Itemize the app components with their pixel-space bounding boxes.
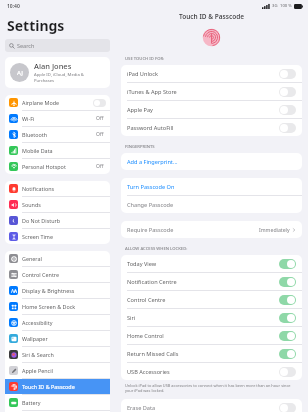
staticText: Apple Pay (127, 106, 279, 114)
button[interactable]: Siri (121, 309, 302, 326)
staticText: 10:40 (7, 3, 20, 10)
staticText: Touch ID & Passcode (22, 383, 106, 390)
staticText: Off (96, 115, 104, 122)
button[interactable]: On (279, 313, 296, 323)
button[interactable]: Off (279, 403, 296, 412)
staticText: 3G (272, 3, 278, 9)
button[interactable]: Erase Data (121, 399, 302, 412)
button[interactable]: Off (279, 69, 296, 79)
button[interactable]: Home Control (121, 327, 302, 344)
staticText: USE TOUCH ID FOR: (125, 56, 165, 62)
staticText: Bluetooth (22, 131, 96, 138)
button[interactable]: Today View (121, 255, 302, 272)
staticText: Return Missed Calls (127, 350, 279, 358)
staticText: Accessibility (22, 319, 106, 326)
staticText: USB Accessories (127, 368, 279, 376)
button[interactable]: Airplane Mode (5, 95, 110, 110)
button[interactable]: General (5, 251, 110, 266)
staticText: Apple ID, iCloud, Media & Purchases (34, 72, 105, 84)
staticText: Personal Hotspot (22, 163, 96, 170)
staticText: Siri (127, 314, 279, 322)
button[interactable]: Off (279, 87, 296, 97)
staticText: ALLOW ACCESS WHEN LOCKED: (125, 246, 188, 252)
staticText: Battery (22, 399, 106, 406)
button[interactable]: On (279, 331, 296, 341)
staticText: General (22, 255, 106, 262)
staticText: Today View (127, 260, 279, 268)
staticText: Erase Data (127, 404, 279, 412)
staticText: iPad Unlock (127, 70, 279, 78)
button[interactable]: Bluetooth (5, 127, 110, 142)
button[interactable]: Turn Passcode On (121, 178, 302, 195)
staticText: Do Not Disturb (22, 217, 106, 224)
button[interactable]: Sounds (5, 197, 110, 212)
staticText: Off (96, 131, 104, 138)
staticText: AJ (17, 69, 23, 77)
button[interactable]: Change Passcode (121, 196, 302, 213)
button[interactable]: On (279, 349, 296, 359)
button[interactable]: USB Accessories (121, 363, 302, 380)
staticText: Immediately (259, 226, 290, 233)
staticText: Sounds (22, 201, 106, 208)
button[interactable]: Control Centre (5, 267, 110, 282)
button[interactable]: Off (279, 123, 296, 133)
staticText: Display & Brightness (22, 287, 106, 294)
staticText: FINGERPRINTS (125, 144, 155, 150)
button[interactable]: Touch ID & Passcode (5, 379, 110, 394)
staticText: Control Centre (22, 271, 106, 278)
staticText: Unlock iPad to allow USB accessories to … (125, 383, 298, 393)
button[interactable]: On (279, 259, 296, 269)
button[interactable]: iTunes & App Store (121, 83, 302, 100)
button[interactable]: Display & Brightness (5, 283, 110, 298)
button[interactable]: Off (279, 367, 296, 377)
staticText: Control Centre (127, 296, 279, 304)
button[interactable]: Off (93, 99, 106, 107)
staticText: Home Control (127, 332, 279, 340)
staticText: Siri & Search (22, 351, 106, 358)
staticText: Off (96, 163, 104, 170)
staticText: Require Passcode (127, 226, 259, 234)
button[interactable]: Password AutoFill (121, 119, 302, 136)
button[interactable]: AJ (5, 57, 110, 88)
staticText: Mobile Data (22, 147, 106, 154)
staticText: 100 % (280, 3, 292, 9)
staticText: Password AutoFill (127, 124, 279, 132)
button[interactable]: Do Not Disturb (5, 213, 110, 228)
button[interactable]: Wi-Fi (5, 111, 110, 126)
staticText: Add a Fingerprint... (127, 158, 296, 166)
staticText: Wi-Fi (22, 115, 96, 122)
button[interactable]: Screen Time (5, 229, 110, 244)
staticText: Alan Jones (34, 61, 72, 71)
button[interactable]: Home Screen & Dock (5, 299, 110, 314)
button[interactable]: Apple Pay (121, 101, 302, 118)
button[interactable]: Mobile Data (5, 143, 110, 158)
button[interactable]: Wallpaper (5, 331, 110, 346)
button[interactable]: Control Centre (121, 291, 302, 308)
button[interactable]: Accessibility (5, 315, 110, 330)
button[interactable]: Notification Centre (121, 273, 302, 290)
button[interactable]: On (279, 295, 296, 305)
button[interactable]: Personal Hotspot (5, 159, 110, 174)
button[interactable]: Require Passcode (121, 221, 302, 238)
staticText: Wallpaper (22, 335, 106, 342)
button[interactable]: Off (279, 105, 296, 115)
staticText: Home Screen & Dock (22, 303, 106, 310)
button[interactable]: On (279, 277, 296, 287)
staticText: Turn Passcode On (127, 183, 296, 191)
button[interactable]: Apple Pencil (5, 363, 110, 378)
button[interactable]: Siri & Search (5, 347, 110, 362)
button[interactable]: Battery (5, 395, 110, 410)
staticText: Apple Pencil (22, 367, 106, 374)
staticText: Search (17, 42, 35, 49)
button[interactable]: Search (5, 39, 110, 52)
staticText: Settings (7, 16, 65, 35)
staticText: Airplane Mode (22, 99, 93, 106)
staticText: Change Passcode (127, 201, 296, 209)
button[interactable]: Add a Fingerprint... (121, 153, 302, 170)
button[interactable]: Notifications (5, 181, 110, 196)
staticText: Notification Centre (127, 278, 279, 286)
button[interactable]: iPad Unlock (121, 65, 302, 82)
button[interactable]: Return Missed Calls (121, 345, 302, 362)
staticText: iTunes & App Store (127, 88, 279, 96)
